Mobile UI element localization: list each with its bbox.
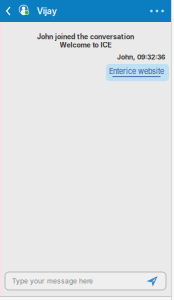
button[interactable]: Vijay [14,0,57,22]
staticText: John joined the conversation [37,32,134,41]
staticText: Vijay [37,6,57,16]
button[interactable]: More options [145,0,169,22]
button[interactable]: Back [3,0,14,22]
button[interactable]: Enterice website [106,64,169,81]
staticText: Type your message here [12,277,93,285]
staticText: John, 09:32:36 [117,53,165,61]
staticText: Welcome to ICE [59,41,111,49]
button[interactable]: Send [146,274,159,287]
staticText: Enterice website [109,67,164,76]
